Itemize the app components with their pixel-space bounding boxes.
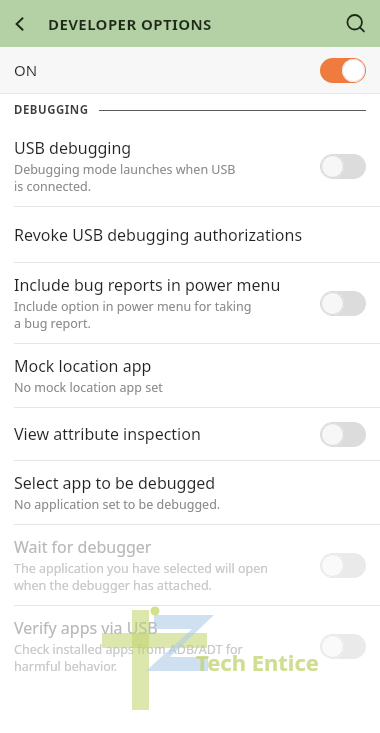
button[interactable]: Search <box>332 0 380 47</box>
staticText: Select app to be debugged <box>14 472 216 494</box>
staticText: The application you have selected will o… <box>14 560 268 594</box>
button[interactable]: Wait for debugger <box>0 525 380 605</box>
button[interactable]: ON <box>0 47 380 93</box>
staticText: Include option in power menu for taking … <box>14 298 252 332</box>
staticText: Wait for debugger <box>14 536 152 558</box>
staticText: USB debugging <box>14 137 132 159</box>
staticText: DEVELOPER OPTIONS <box>48 14 212 34</box>
staticText: DEBUGGING <box>14 102 89 118</box>
button[interactable]: Mock location app <box>0 344 380 407</box>
staticText: Check installed apps from ADB/ADT for ha… <box>14 641 243 675</box>
button[interactable]: View attribute inspection <box>0 408 380 460</box>
button[interactable]: USB debugging <box>0 126 380 206</box>
button[interactable]: Select app to be debugged <box>0 461 380 524</box>
staticText: ON <box>14 60 38 80</box>
staticText: Verify apps via USB <box>14 617 158 639</box>
staticText: No mock location app set <box>14 379 163 396</box>
button[interactable]: Verify apps via USB <box>0 606 380 686</box>
button[interactable]: Back <box>0 4 40 44</box>
staticText: Include bug reports in power menu <box>14 274 281 296</box>
staticText: No application set to be debugged. <box>14 496 221 513</box>
staticText: Revoke USB debugging authorizations <box>14 224 303 246</box>
button[interactable]: Include bug reports in power menu <box>0 263 380 343</box>
button[interactable]: Revoke USB debugging authorizations <box>0 207 380 262</box>
staticText: Debugging mode launches when USB is conn… <box>14 161 236 195</box>
staticText: Mock location app <box>14 355 152 377</box>
staticText: Tech Entice <box>196 647 319 677</box>
staticText: View attribute inspection <box>14 423 201 445</box>
